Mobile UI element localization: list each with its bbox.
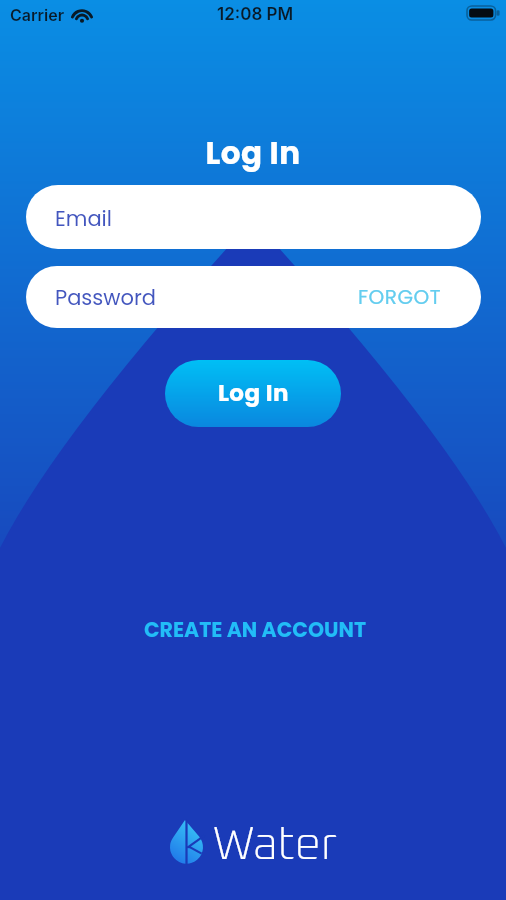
other: Battery full — [467, 6, 500, 20]
staticText: 12:08 PM — [217, 4, 294, 25]
staticText: Email — [55, 204, 112, 233]
staticText: CREATE AN ACCOUNT — [144, 615, 367, 644]
other: Wi-Fi signal — [72, 7, 92, 23]
staticText: FORGOT — [358, 283, 442, 311]
button[interactable]: Log In — [165, 360, 341, 427]
button[interactable]: FORGOT — [350, 273, 450, 321]
button[interactable]: CREATE AN ACCOUNT — [130, 605, 381, 654]
staticText: Password — [55, 283, 156, 312]
staticText: Log In — [218, 377, 289, 409]
button[interactable]: Email — [26, 185, 481, 249]
staticText: Log In — [0, 131, 506, 174]
other: Water logo — [170, 820, 203, 864]
button[interactable]: Password — [26, 266, 481, 328]
staticText: Carrier — [10, 5, 64, 24]
staticText: Water — [213, 823, 338, 869]
